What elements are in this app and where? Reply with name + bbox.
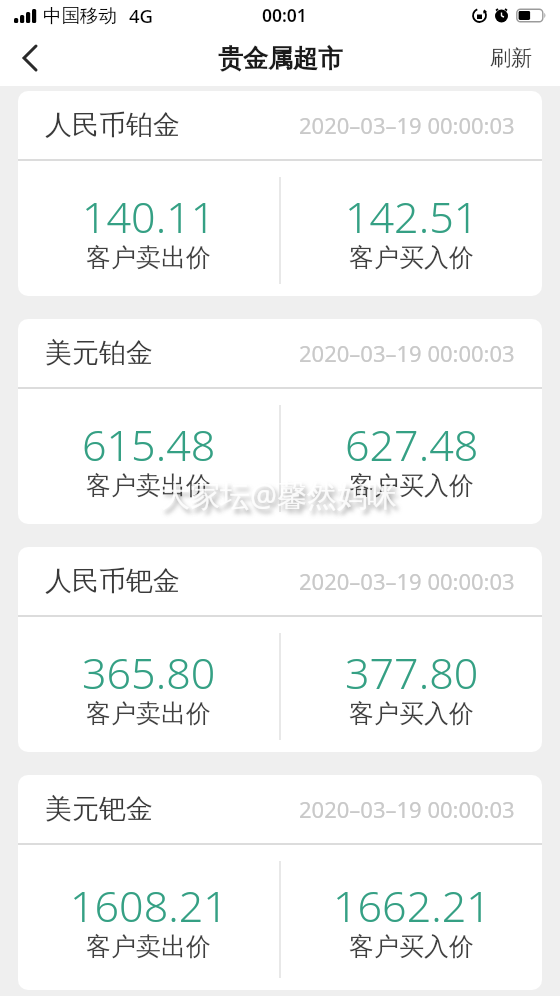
button[interactable]: 美元铂金 (18, 319, 542, 524)
staticText: 客户卖出价 (86, 242, 211, 273)
staticText: 大家坛@馨然妈咪 (160, 474, 397, 515)
staticText: 中国移动 (43, 4, 117, 27)
button[interactable]: 刷新 (490, 45, 532, 71)
staticText: 615.48 (82, 415, 216, 474)
staticText: 2020–03–19 00:00:03 (299, 110, 515, 140)
staticText: 142.51 (345, 187, 479, 246)
staticText: 客户买入价 (349, 242, 474, 273)
staticText: 2020–03–19 00:00:03 (299, 338, 515, 368)
staticText: 2020–03–19 00:00:03 (299, 566, 515, 596)
staticText: 刷新 (490, 45, 532, 71)
staticText: 627.48 (345, 415, 479, 474)
staticText: 美元钯金 (45, 792, 153, 826)
staticText: 1662.21 (333, 876, 491, 935)
staticText: 客户卖出价 (86, 470, 211, 501)
staticText: 00:01 (262, 3, 307, 27)
staticText: 客户买入价 (349, 470, 474, 501)
button[interactable]: 人民币铂金 (18, 91, 542, 296)
staticText: 人民币铂金 (45, 108, 180, 142)
staticText: 人民币钯金 (45, 564, 180, 598)
staticText: 贵金属超市 (218, 43, 343, 74)
staticText: 1608.21 (70, 876, 228, 935)
staticText: 客户卖出价 (86, 931, 211, 962)
staticText: 客户买入价 (349, 931, 474, 962)
button[interactable]: 人民币钯金 (18, 547, 542, 752)
staticText: 377.80 (345, 643, 479, 702)
staticText: 4G (129, 3, 154, 28)
button[interactable] (8, 34, 56, 82)
staticText: 客户买入价 (349, 698, 474, 729)
staticText: 140.11 (82, 187, 216, 246)
staticText: 美元铂金 (45, 336, 153, 370)
staticText: 2020–03–19 00:00:03 (299, 794, 515, 824)
staticText: 365.80 (82, 643, 216, 702)
button[interactable]: 美元钯金 (18, 775, 542, 990)
staticText: 客户卖出价 (86, 698, 211, 729)
